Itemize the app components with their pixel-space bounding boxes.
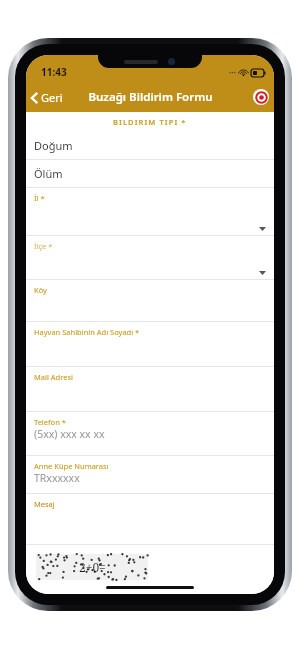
staticText: İlçe * bbox=[34, 241, 53, 251]
staticText: Geri bbox=[41, 90, 63, 105]
button[interactable]: Hayvan Sahibinin Adı Soyadı * bbox=[26, 322, 274, 367]
staticText: Anne Küpe Numarası bbox=[34, 461, 109, 471]
staticText: İl * bbox=[34, 193, 45, 203]
button[interactable]: Ölüm bbox=[26, 160, 274, 188]
button[interactable]: Anne Küpe Numarası bbox=[26, 456, 274, 494]
staticText: Buzağı Bildirim Formu bbox=[88, 89, 213, 105]
staticText: ••• bbox=[229, 69, 236, 77]
button[interactable]: Köy bbox=[26, 280, 274, 322]
button[interactable]: Geri bbox=[26, 85, 69, 110]
staticText: (5xx) xxx xx xx bbox=[34, 427, 105, 441]
button[interactable]: Telefon * bbox=[26, 412, 274, 456]
button[interactable]: Doğum bbox=[26, 132, 274, 160]
button[interactable]: Mail Adresi bbox=[26, 367, 274, 412]
staticText: Mail Adresi bbox=[34, 372, 73, 382]
button[interactable]: Kurum logosu bbox=[253, 89, 269, 105]
staticText: BILDIRIM TIPI * bbox=[113, 117, 187, 127]
button[interactable]: Mesaj bbox=[26, 494, 274, 545]
staticText: Mesaj bbox=[34, 499, 55, 509]
staticText: Telefon * bbox=[34, 417, 66, 427]
staticText: Ölüm bbox=[34, 166, 63, 181]
staticText: 2+0= bbox=[79, 559, 106, 575]
staticText: Doğum bbox=[34, 138, 73, 153]
staticText: Köy bbox=[34, 285, 47, 295]
button[interactable]: İlçe * bbox=[26, 236, 274, 280]
staticText: TRxxxxxx bbox=[34, 471, 80, 485]
staticText: Hayvan Sahibinin Adı Soyadı * bbox=[34, 327, 140, 337]
staticText: 11:43 bbox=[41, 65, 67, 79]
button[interactable]: İl * bbox=[26, 188, 274, 236]
button[interactable]: Güvenlik kodu bbox=[36, 554, 148, 580]
